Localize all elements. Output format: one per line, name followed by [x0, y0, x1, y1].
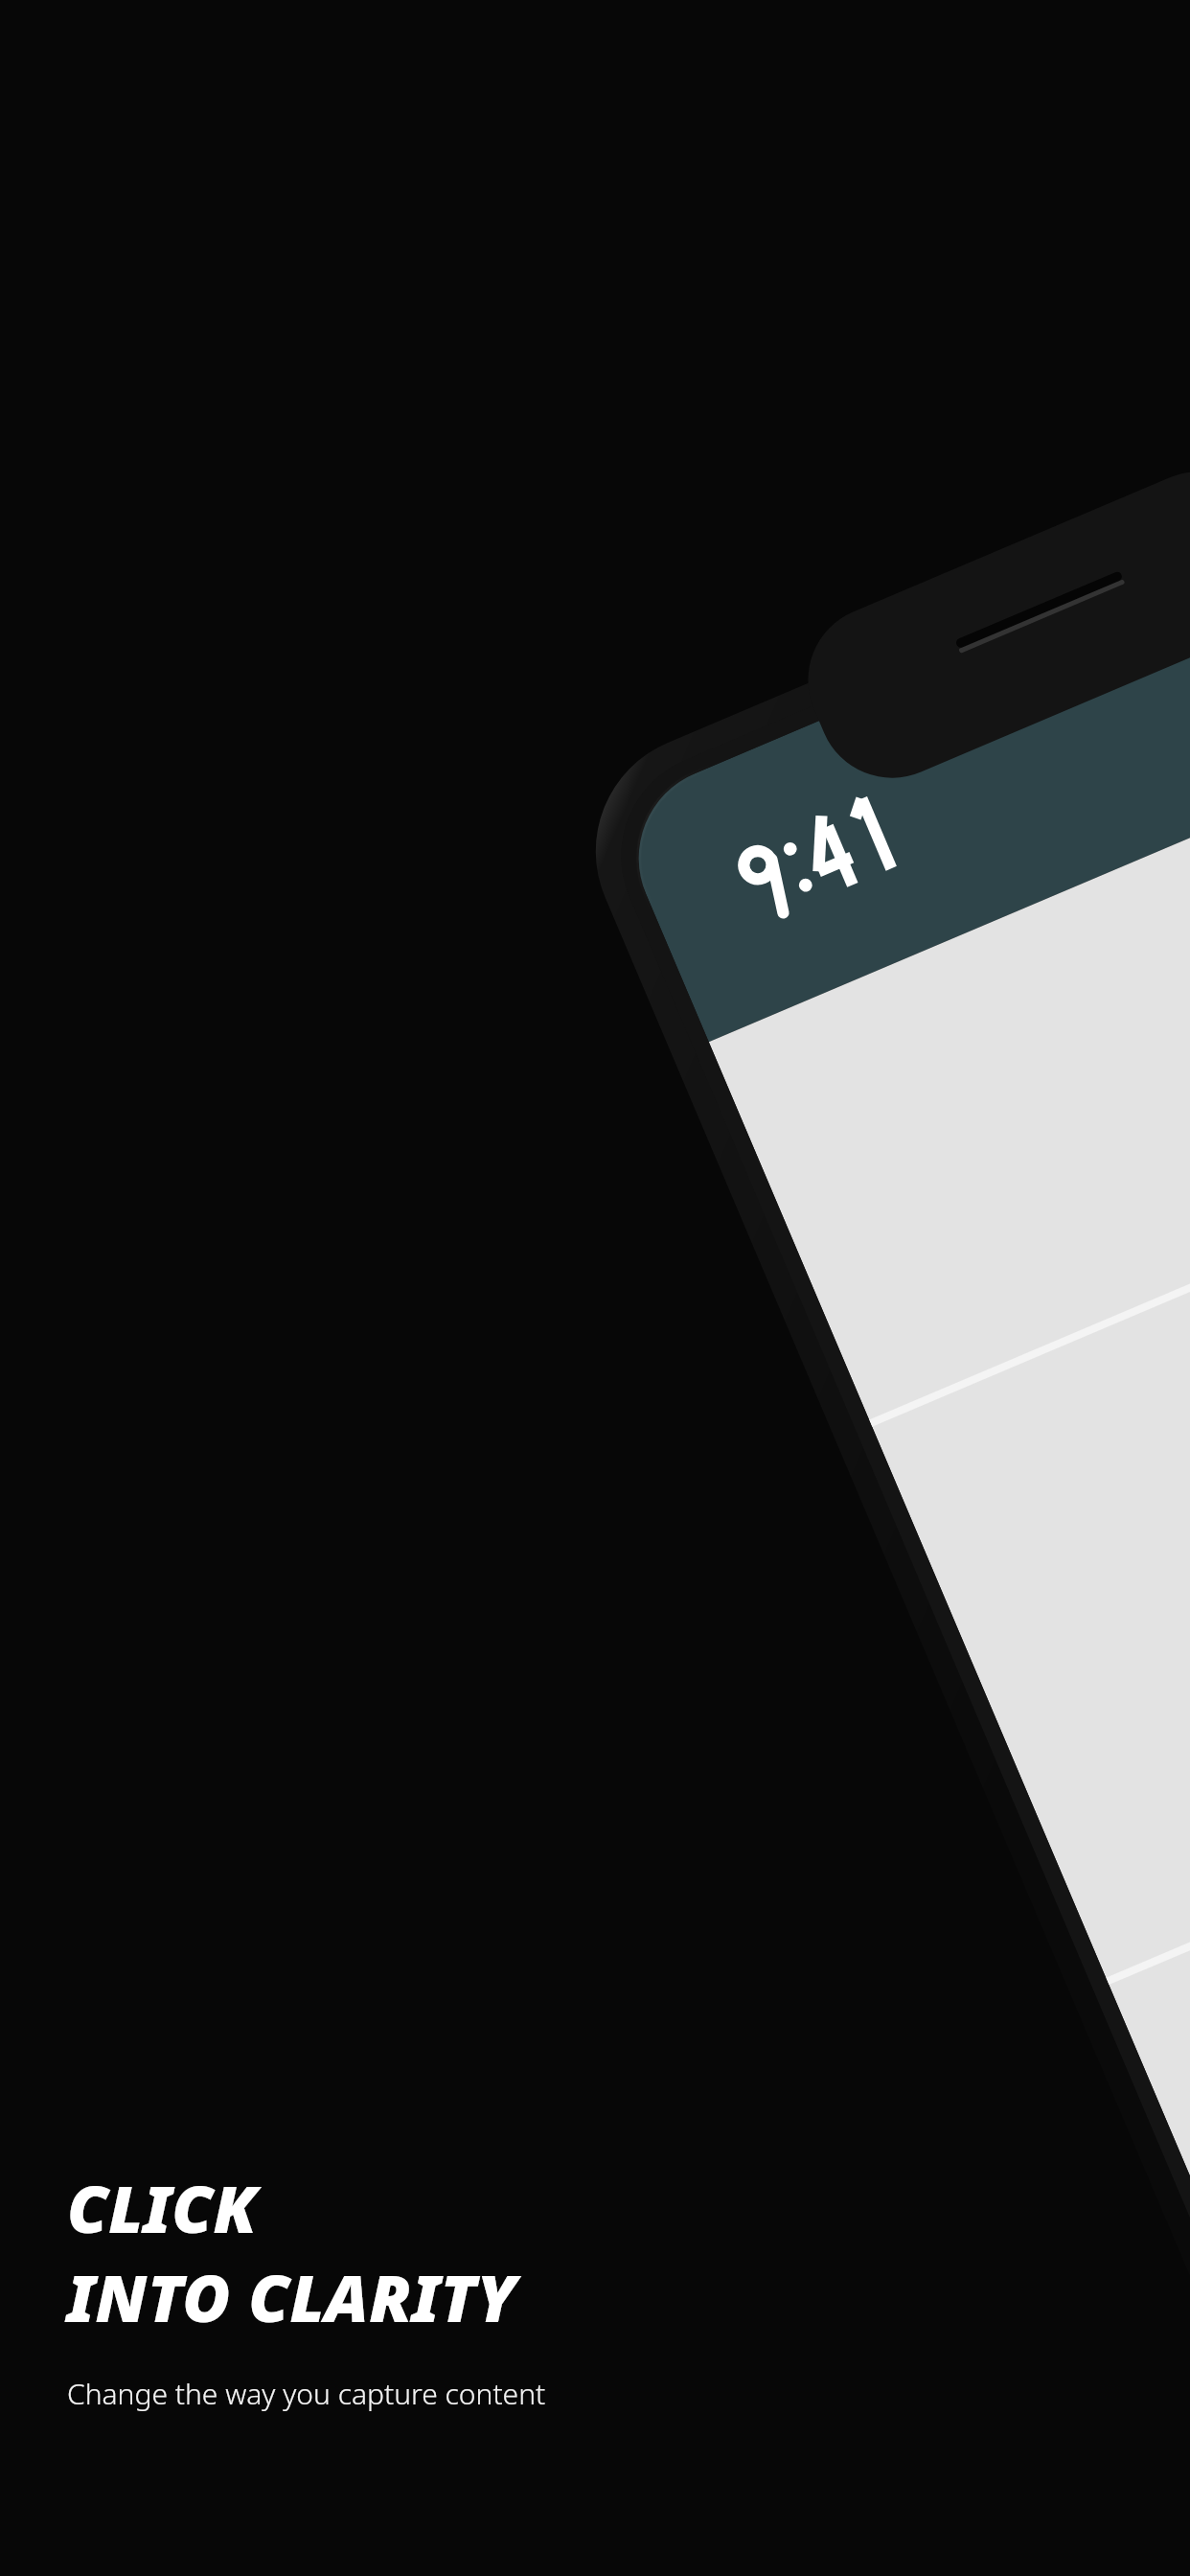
- staticText: INTO CLARITY: [67, 2252, 517, 2341]
- staticText: Change the way you capture content: [67, 2374, 546, 2413]
- staticText: CLICK: [67, 2163, 258, 2252]
